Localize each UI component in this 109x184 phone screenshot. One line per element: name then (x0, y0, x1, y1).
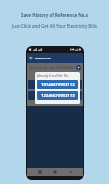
staticText: Already Used Ref. No (37, 74, 69, 78)
staticText: 10144670992112 (41, 82, 75, 88)
staticText: Save History of Reference No.s (21, 12, 88, 18)
staticText: Reference No. (eg. 1234567890) (29, 66, 74, 70)
staticText: 12345670992113 (41, 93, 75, 99)
staticText: Just Click and Get All Your Electricity … (12, 23, 97, 29)
button[interactable]: Info (76, 65, 81, 70)
button[interactable]: 12345670992113 (37, 91, 78, 100)
button[interactable]: Home (52, 169, 58, 175)
staticText: Reference No. (35, 57, 52, 60)
button[interactable]: Back (28, 55, 34, 61)
button[interactable]: Recents (37, 169, 43, 175)
button[interactable]: Back (68, 169, 74, 175)
button[interactable]: 10144670992112 (37, 80, 78, 89)
